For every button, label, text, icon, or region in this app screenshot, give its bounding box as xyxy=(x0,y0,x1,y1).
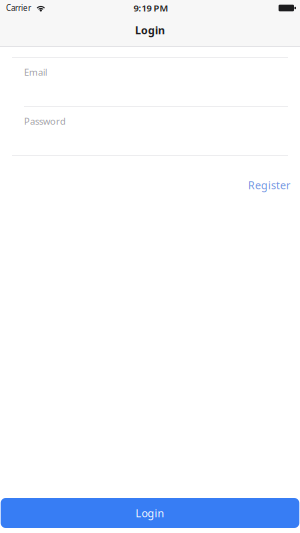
staticText: Register xyxy=(248,178,290,192)
staticText: Email xyxy=(24,66,47,78)
button[interactable]: Login xyxy=(1,498,299,528)
staticText: Login xyxy=(135,23,165,37)
button[interactable]: Register xyxy=(230,159,300,201)
staticText: Carrier xyxy=(6,3,31,13)
button[interactable]: Email xyxy=(0,58,300,106)
staticText: Login xyxy=(135,506,164,520)
staticText: Password xyxy=(24,115,66,127)
staticText: 9:19 PM xyxy=(133,2,168,14)
button[interactable]: Password xyxy=(0,107,300,155)
